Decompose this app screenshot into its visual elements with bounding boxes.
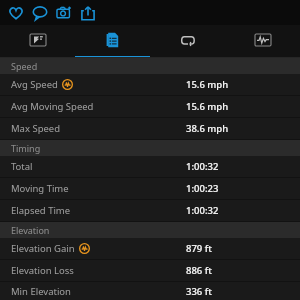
staticText: 879 ft (186, 242, 212, 255)
button[interactable]: Photo (55, 4, 73, 22)
button[interactable]: Avg Speed (0, 74, 300, 95)
staticText: Elapsed Time (11, 204, 71, 217)
button[interactable]: Map (0, 25, 75, 58)
staticText: 38.6 mph (186, 122, 229, 135)
button[interactable]: Min Elevation (0, 282, 300, 300)
staticText: 336 ft (186, 285, 212, 298)
staticText: 886 ft (186, 264, 212, 277)
button[interactable]: Details (75, 25, 150, 58)
button[interactable]: Elevation Loss (0, 260, 300, 281)
staticText: Speed (11, 60, 38, 72)
staticText: Max Speed (11, 122, 61, 135)
staticText: Min Elevation (11, 285, 71, 298)
button[interactable]: Like (7, 4, 25, 22)
staticText: 15.6 mph (186, 78, 229, 91)
button[interactable]: Comment (31, 4, 49, 22)
button[interactable]: Share (79, 4, 97, 22)
staticText: 1:00:23 (186, 182, 219, 195)
button[interactable]: Elapsed Time (0, 200, 300, 221)
button[interactable]: Moving Time (0, 178, 300, 199)
button[interactable]: Charts (225, 25, 300, 58)
staticText: 1:00:32 (186, 204, 219, 217)
staticText: Elevation (11, 224, 50, 236)
button[interactable]: Avg Moving Speed (0, 96, 300, 117)
button[interactable]: Max Speed (0, 118, 300, 139)
staticText: Elevation Loss (11, 264, 74, 277)
button[interactable]: Elevation Gain (0, 238, 300, 259)
staticText: Avg Speed (11, 78, 58, 91)
staticText: Avg Moving Speed (11, 100, 94, 113)
staticText: Moving Time (11, 182, 69, 195)
staticText: Timing (11, 142, 41, 154)
staticText: 15.6 mph (186, 100, 229, 113)
button[interactable]: Total (0, 156, 300, 177)
staticText: 1:00:32 (186, 160, 219, 173)
staticText: Total (11, 160, 33, 173)
button[interactable]: Laps (150, 25, 225, 58)
staticText: Elevation Gain (11, 242, 75, 255)
